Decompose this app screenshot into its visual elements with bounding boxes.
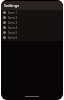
button[interactable]: Item 5 [1, 30, 63, 35]
button[interactable]: Item 3 [1, 20, 63, 25]
staticText: Item 2 [8, 16, 18, 20]
button[interactable]: Item 6 [1, 35, 63, 40]
staticText: Item 4 [8, 26, 18, 30]
staticText: Settings [4, 3, 20, 8]
button[interactable]: Item 2 [1, 15, 63, 20]
button[interactable]: Item 1 [1, 10, 63, 15]
button[interactable]: Item 4 [1, 25, 63, 30]
staticText: Item 1 [8, 11, 18, 15]
staticText: Item 5 [8, 31, 18, 35]
button[interactable]: Settings [1, 1, 63, 10]
staticText: Item 6 [8, 36, 18, 40]
staticText: Item 3 [8, 21, 18, 25]
